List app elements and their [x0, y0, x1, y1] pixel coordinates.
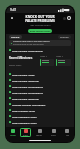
staticText: Total Passing Attempts — [12, 79, 39, 82]
button[interactable]: Week 4 — [40, 55, 54, 66]
button[interactable]: Total Passing Completions — [9, 89, 71, 95]
staticText: Total Passing Yards — [12, 73, 35, 76]
staticText: Total Receiving Yards — [12, 115, 37, 118]
button[interactable]: Total Receiving Yards — [9, 113, 71, 119]
button[interactable]: Popular — [9, 35, 22, 39]
staticText: Total Passing Completions — [12, 91, 43, 94]
button[interactable]: Book Session Today — [28, 29, 52, 33]
staticText: Week 4 — [56, 55, 63, 58]
staticText: Total Passing Attempts — [12, 97, 39, 100]
button[interactable]: Specials — [58, 35, 71, 39]
button[interactable]: Teams — [33, 128, 45, 137]
staticText: KNOCK OUT YOUR — [25, 15, 55, 19]
staticText: are performing at the highest level — [13, 43, 44, 46]
button[interactable]: Combine these stats to see which players — [9, 40, 71, 46]
staticText: Recent Milestones — [9, 56, 33, 60]
staticText: Total Passing Touchdowns — [12, 49, 43, 52]
staticText: GET STARTED TODAY — [30, 24, 51, 27]
button[interactable]: Total Passing Touchdowns — [9, 47, 71, 53]
staticText: Me — [66, 134, 69, 137]
button[interactable]: Longest Passing Completion — [9, 101, 71, 107]
button[interactable]: Stats — [47, 128, 59, 137]
button[interactable]: Total Passing Completions — [9, 83, 71, 89]
button[interactable]: Total Rushing Yards — [9, 107, 71, 113]
staticText: PALATE PROBLEMS — [25, 19, 55, 23]
button[interactable]: Total Receiving Yards — [9, 119, 71, 125]
button[interactable]: Week 4 — [56, 55, 71, 66]
button[interactable]: Plays — [20, 128, 31, 137]
staticText: 9:41 — [10, 8, 17, 12]
staticText: Plays — [23, 134, 28, 137]
staticText: Teams — [36, 134, 43, 137]
button[interactable]: Notifications — [63, 17, 66, 20]
staticText: Home — [10, 134, 16, 137]
staticText: Popular — [11, 36, 20, 39]
staticText: Total Rushing Yards — [12, 109, 35, 112]
button[interactable]: Menu — [11, 17, 13, 19]
button[interactable]: Total Passing Yards — [9, 71, 71, 77]
staticText: Week 4 — [40, 55, 47, 58]
staticText: Total Passing Completions — [12, 85, 43, 88]
staticText: Stats — [51, 134, 56, 137]
staticText: Longest Passing Completion — [12, 103, 46, 106]
button[interactable]: Profile — [67, 16, 71, 20]
button[interactable]: Home — [7, 128, 18, 137]
staticText: Combine these stats to see which players — [13, 40, 50, 43]
button[interactable]: Total Passing Attempts — [9, 95, 71, 101]
button[interactable]: Me — [61, 128, 73, 137]
staticText: Select Stats — [9, 64, 22, 67]
staticText: Book Session Today — [30, 30, 51, 33]
button[interactable]: Total Passing Attempts — [9, 77, 71, 83]
staticText: Total Receiving Yards — [12, 121, 37, 124]
staticText: Specials — [60, 36, 69, 39]
